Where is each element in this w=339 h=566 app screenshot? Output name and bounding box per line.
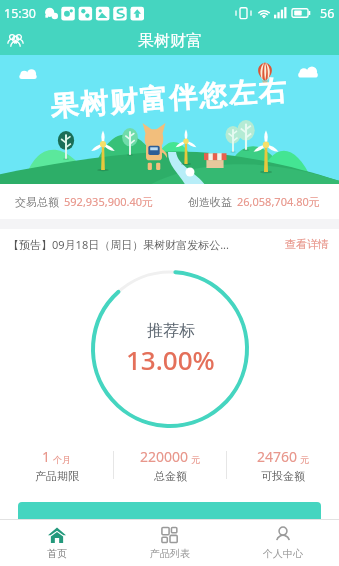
staticText: 【预告】09月18日（周日）果树财富发标公...	[8, 237, 285, 252]
staticText: 可投金额	[261, 469, 305, 483]
staticText: 查看详情	[285, 237, 329, 251]
staticText: 交易总额	[15, 195, 59, 209]
staticText: 元	[300, 454, 309, 465]
staticText: 首页	[47, 547, 67, 560]
button[interactable]: 首页	[0, 520, 113, 566]
staticText: 220000	[140, 447, 189, 466]
staticText: 13.00%	[126, 342, 215, 377]
staticText: 果树财富	[138, 31, 202, 51]
staticText: 创造收益	[188, 195, 232, 209]
staticText: 产品列表	[150, 547, 190, 560]
staticText: 元	[191, 454, 200, 465]
staticText: 推荐标	[147, 321, 195, 341]
staticText: 26,058,704.80元	[237, 194, 320, 209]
staticText: 24760	[257, 447, 298, 466]
button[interactable]: 马上投资	[18, 502, 321, 552]
button[interactable]: 【预告】09月18日（周日）果树财富发标公...	[0, 229, 339, 259]
staticText: 56	[320, 5, 335, 22]
staticText: 总金额	[154, 469, 187, 483]
button[interactable]: 产品列表	[113, 520, 226, 566]
staticText: 马上投资	[140, 518, 200, 537]
staticText: 果树财富伴您左右	[49, 73, 290, 124]
button[interactable]: 个人中心	[226, 520, 339, 566]
button[interactable]: Invite friends	[0, 26, 30, 55]
staticText: 个月	[53, 454, 71, 465]
staticText: 1	[42, 447, 51, 466]
staticText: 15:30	[4, 5, 36, 22]
staticText: 个人中心	[263, 547, 303, 560]
staticText: 产品期限	[35, 469, 79, 483]
staticText: 592,935,900.40元	[64, 194, 154, 209]
